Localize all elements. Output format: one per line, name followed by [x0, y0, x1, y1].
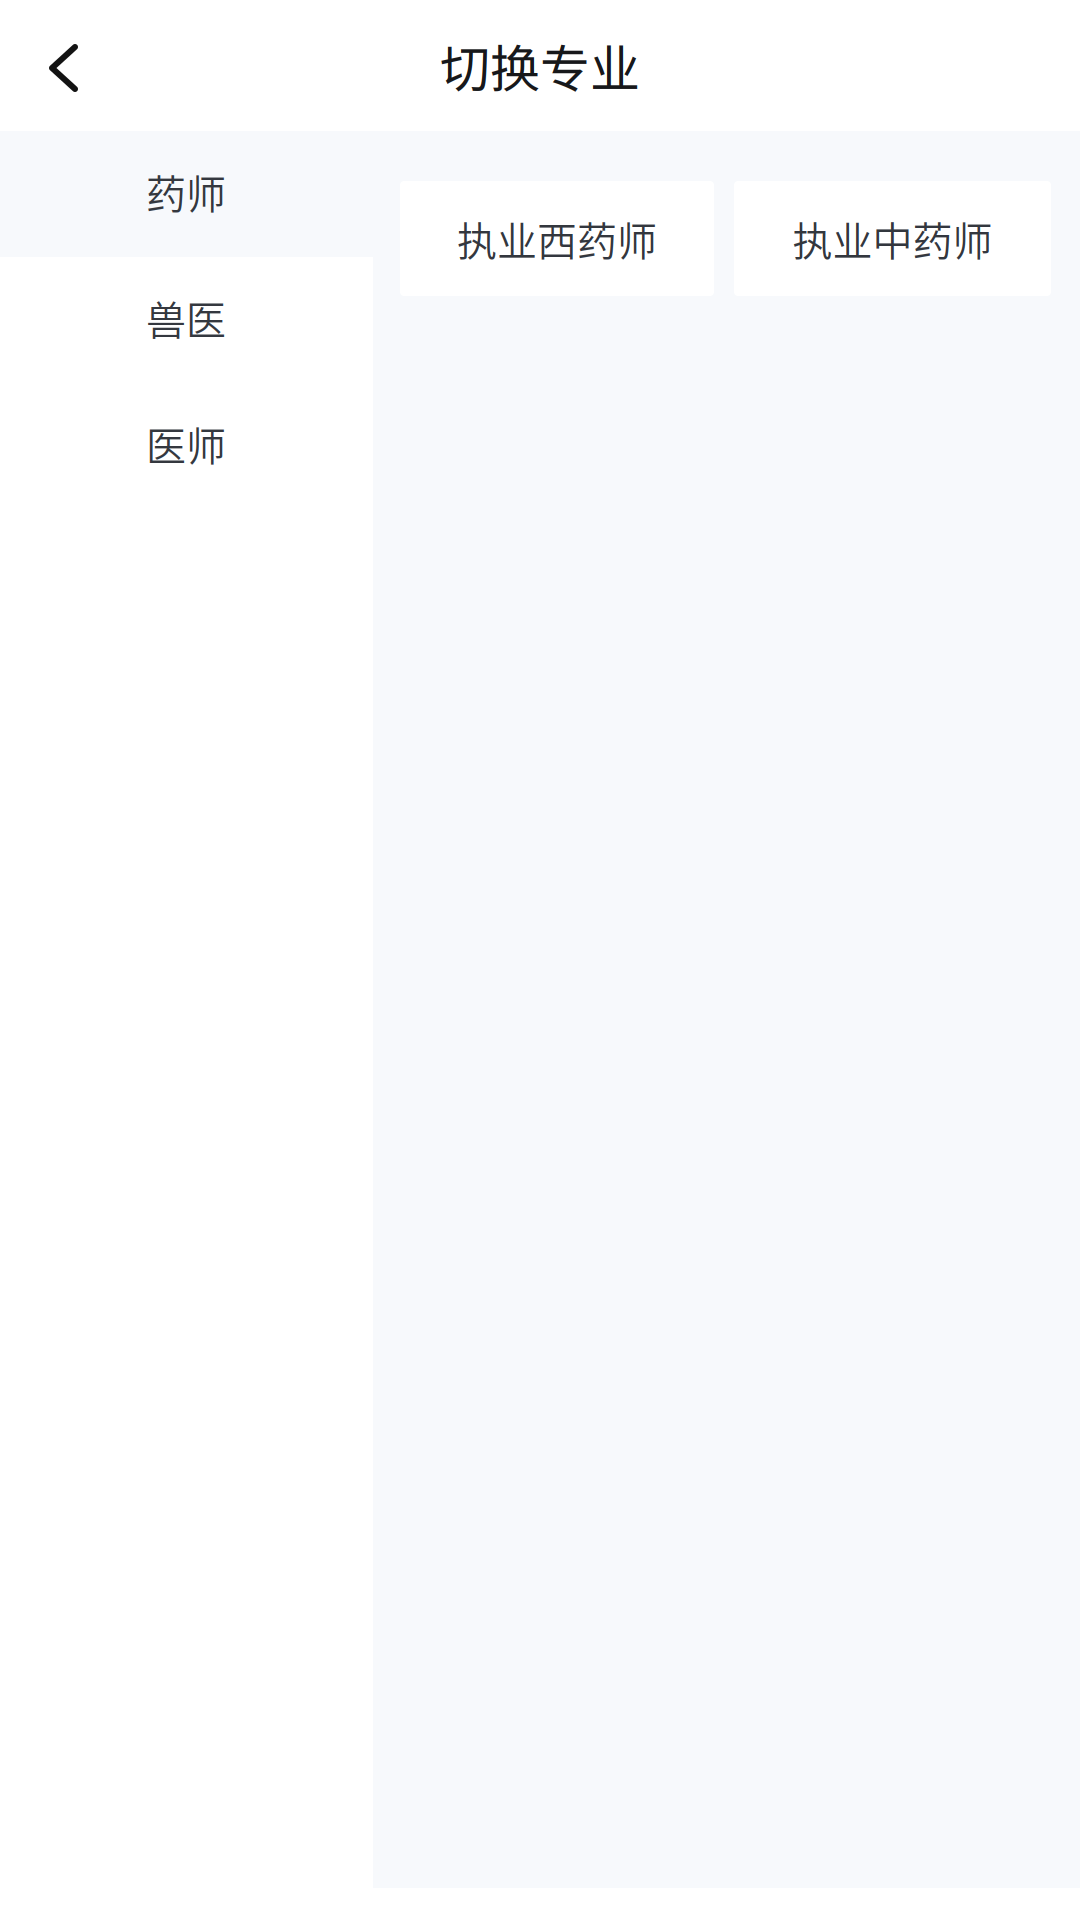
button[interactable]: 返回 — [0, 0, 127, 131]
button[interactable]: 医师 — [0, 383, 373, 509]
staticText: 医师 — [146, 414, 226, 472]
staticText: 执业西药师 — [457, 209, 657, 267]
button[interactable]: 药师 — [0, 131, 373, 257]
staticText: 切换专业 — [440, 29, 640, 102]
button[interactable]: 兽医 — [0, 257, 373, 383]
staticText: 执业中药师 — [792, 209, 992, 267]
staticText: 药师 — [146, 162, 226, 220]
button[interactable]: 执业中药师 — [734, 181, 1051, 296]
button[interactable]: 执业西药师 — [400, 181, 714, 296]
staticText: 兽医 — [146, 288, 226, 346]
